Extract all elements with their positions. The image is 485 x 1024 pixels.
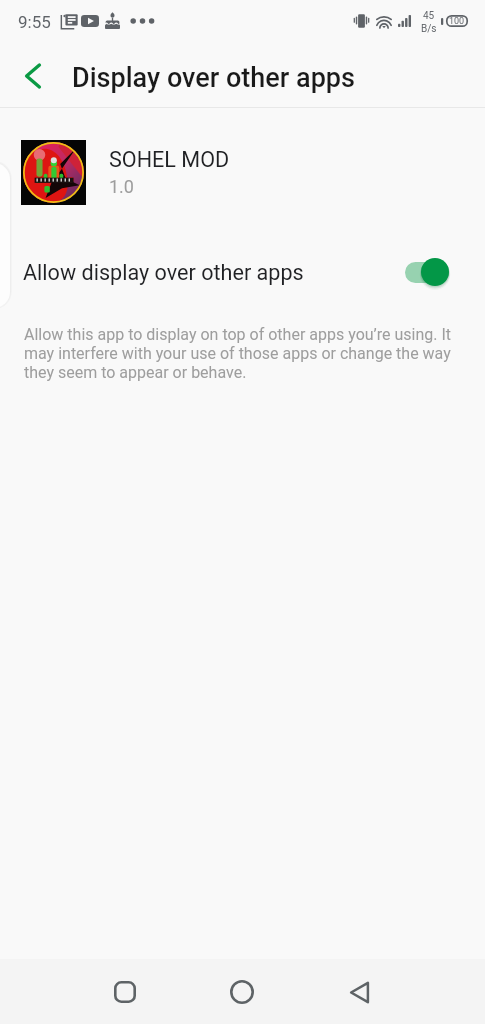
button[interactable]: Back (324, 959, 394, 1024)
button[interactable]: Recent apps (90, 959, 160, 1024)
button[interactable]: Back (10, 53, 56, 99)
staticText: B/s (421, 23, 437, 35)
staticText: 9:55 (18, 12, 51, 32)
button[interactable]: Home (207, 959, 277, 1024)
staticText: Display over other apps (72, 62, 355, 94)
staticText: SOHEL MOD (109, 147, 230, 172)
staticText: 45 (423, 10, 435, 22)
staticText: Allow this app to display on top of othe… (24, 325, 464, 382)
button[interactable]: Allow display over other apps (0, 250, 485, 298)
staticText: 100 (449, 16, 465, 27)
staticText: Allow display over other apps (23, 260, 304, 285)
staticText: 1.0 (109, 176, 134, 197)
